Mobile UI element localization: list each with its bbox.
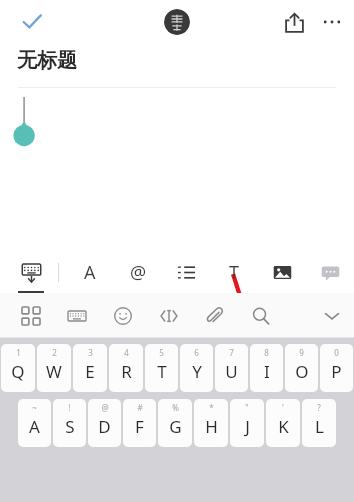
- button[interactable]: 1: [1, 344, 35, 392]
- button[interactable]: Emoji: [100, 293, 146, 338]
- button[interactable]: More options: [314, 2, 350, 42]
- button[interactable]: ': [266, 399, 300, 447]
- staticText: @: [101, 402, 109, 413]
- staticText: G: [169, 415, 182, 438]
- staticText: K: [278, 415, 289, 438]
- staticText: R: [121, 360, 132, 383]
- button[interactable]: !: [53, 399, 86, 447]
- button[interactable]: Title: [210, 251, 258, 293]
- button[interactable]: ~: [18, 399, 51, 447]
- staticText: ?: [317, 402, 321, 413]
- staticText: 3: [88, 347, 93, 358]
- button[interactable]: Collapse: [310, 294, 354, 338]
- staticText: T: [229, 260, 240, 285]
- staticText: 1: [16, 347, 21, 358]
- button[interactable]: 5: [145, 344, 178, 392]
- button[interactable]: Mention: [114, 251, 162, 293]
- button[interactable]: Hide keyboard: [10, 251, 52, 293]
- button[interactable]: ?: [302, 399, 336, 447]
- staticText: 8: [264, 347, 269, 358]
- staticText: A: [29, 415, 40, 438]
- button[interactable]: 7: [215, 344, 248, 392]
- staticText: E: [85, 360, 95, 383]
- staticText: H: [205, 415, 218, 438]
- button[interactable]: Attachment: [192, 293, 238, 338]
- button[interactable]: Comment: [306, 251, 354, 293]
- staticText: ~: [32, 402, 37, 413]
- staticText: 4: [124, 347, 129, 358]
- button[interactable]: 6: [180, 344, 213, 392]
- button[interactable]: *: [194, 399, 228, 447]
- staticText: F: [135, 415, 144, 438]
- staticText: 0: [334, 347, 339, 358]
- staticText: 2: [52, 347, 57, 358]
- button[interactable]: Keyboard: [54, 293, 100, 338]
- button[interactable]: Apps: [8, 293, 54, 338]
- button[interactable]: @: [88, 399, 121, 447]
- button[interactable]: 9: [285, 344, 318, 392]
- staticText: 7: [229, 347, 234, 358]
- staticText: ": [245, 402, 249, 413]
- staticText: *: [209, 402, 214, 413]
- button[interactable]: %: [158, 399, 192, 447]
- staticText: D: [98, 415, 111, 438]
- staticText: Q: [11, 360, 25, 383]
- staticText: 9: [299, 347, 304, 358]
- button[interactable]: 8: [250, 344, 283, 392]
- staticText: A: [84, 260, 96, 285]
- staticText: Y: [192, 360, 202, 383]
- staticText: #: [137, 402, 143, 413]
- staticText: T: [157, 360, 167, 383]
- staticText: U: [225, 360, 238, 383]
- staticText: J: [245, 415, 250, 438]
- staticText: W: [46, 360, 62, 383]
- staticText: I: [264, 360, 270, 383]
- staticText: @: [130, 260, 147, 285]
- staticText: 6: [194, 347, 199, 358]
- staticText: %: [172, 402, 179, 413]
- staticText: 无标题: [17, 48, 77, 73]
- button[interactable]: Text style: [65, 251, 114, 293]
- button[interactable]: Share: [274, 2, 314, 42]
- button[interactable]: Insert image: [258, 251, 306, 293]
- button[interactable]: Search: [238, 293, 284, 338]
- button[interactable]: 3: [73, 344, 107, 392]
- button[interactable]: 4: [109, 344, 143, 392]
- button[interactable]: 0: [320, 344, 353, 392]
- staticText: O: [295, 360, 309, 383]
- staticText: S: [65, 415, 75, 438]
- button[interactable]: #: [123, 399, 156, 447]
- button[interactable]: Done: [10, 0, 54, 44]
- button[interactable]: 2: [37, 344, 71, 392]
- button[interactable]: Code: [146, 293, 192, 338]
- button[interactable]: ": [230, 399, 264, 447]
- staticText: P: [331, 360, 342, 383]
- staticText: L: [315, 415, 324, 438]
- staticText: ': [282, 402, 284, 413]
- staticText: 5: [159, 347, 164, 358]
- staticText: !: [68, 402, 71, 413]
- button[interactable]: List: [162, 251, 210, 293]
- button[interactable]: Profile: [164, 9, 190, 35]
